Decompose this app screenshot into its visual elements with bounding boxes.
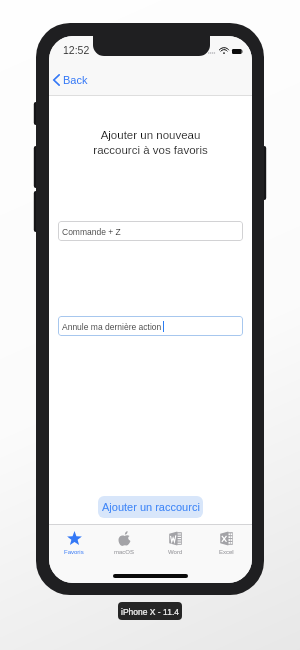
button[interactable]: Commande + Z <box>58 221 243 241</box>
staticText: Ajouter un nouveau raccourci à vos favor… <box>49 129 252 156</box>
staticText: iPhone X - 11.4 <box>121 607 179 616</box>
staticText: Commande + Z <box>62 227 121 236</box>
staticText: 12:52 <box>63 44 90 56</box>
staticText: Favoris <box>64 549 84 556</box>
button[interactable]: Annule ma dernière action <box>58 316 243 336</box>
staticText: Ajouter un raccourci <box>102 501 200 513</box>
staticText: Word <box>168 549 183 556</box>
button[interactable]: Favoris <box>49 525 99 556</box>
button[interactable]: Back <box>49 69 98 95</box>
other: Favoris <box>67 531 82 546</box>
button[interactable]: Word <box>150 525 201 556</box>
staticText: Back <box>63 74 88 86</box>
staticText: Annule ma dernière action <box>62 322 162 331</box>
button[interactable]: macOS <box>99 525 150 556</box>
button[interactable]: Excel <box>201 525 252 556</box>
button[interactable]: Ajouter un raccourci <box>98 496 203 518</box>
staticText: macOS <box>114 549 135 556</box>
staticText: Excel <box>219 549 234 556</box>
